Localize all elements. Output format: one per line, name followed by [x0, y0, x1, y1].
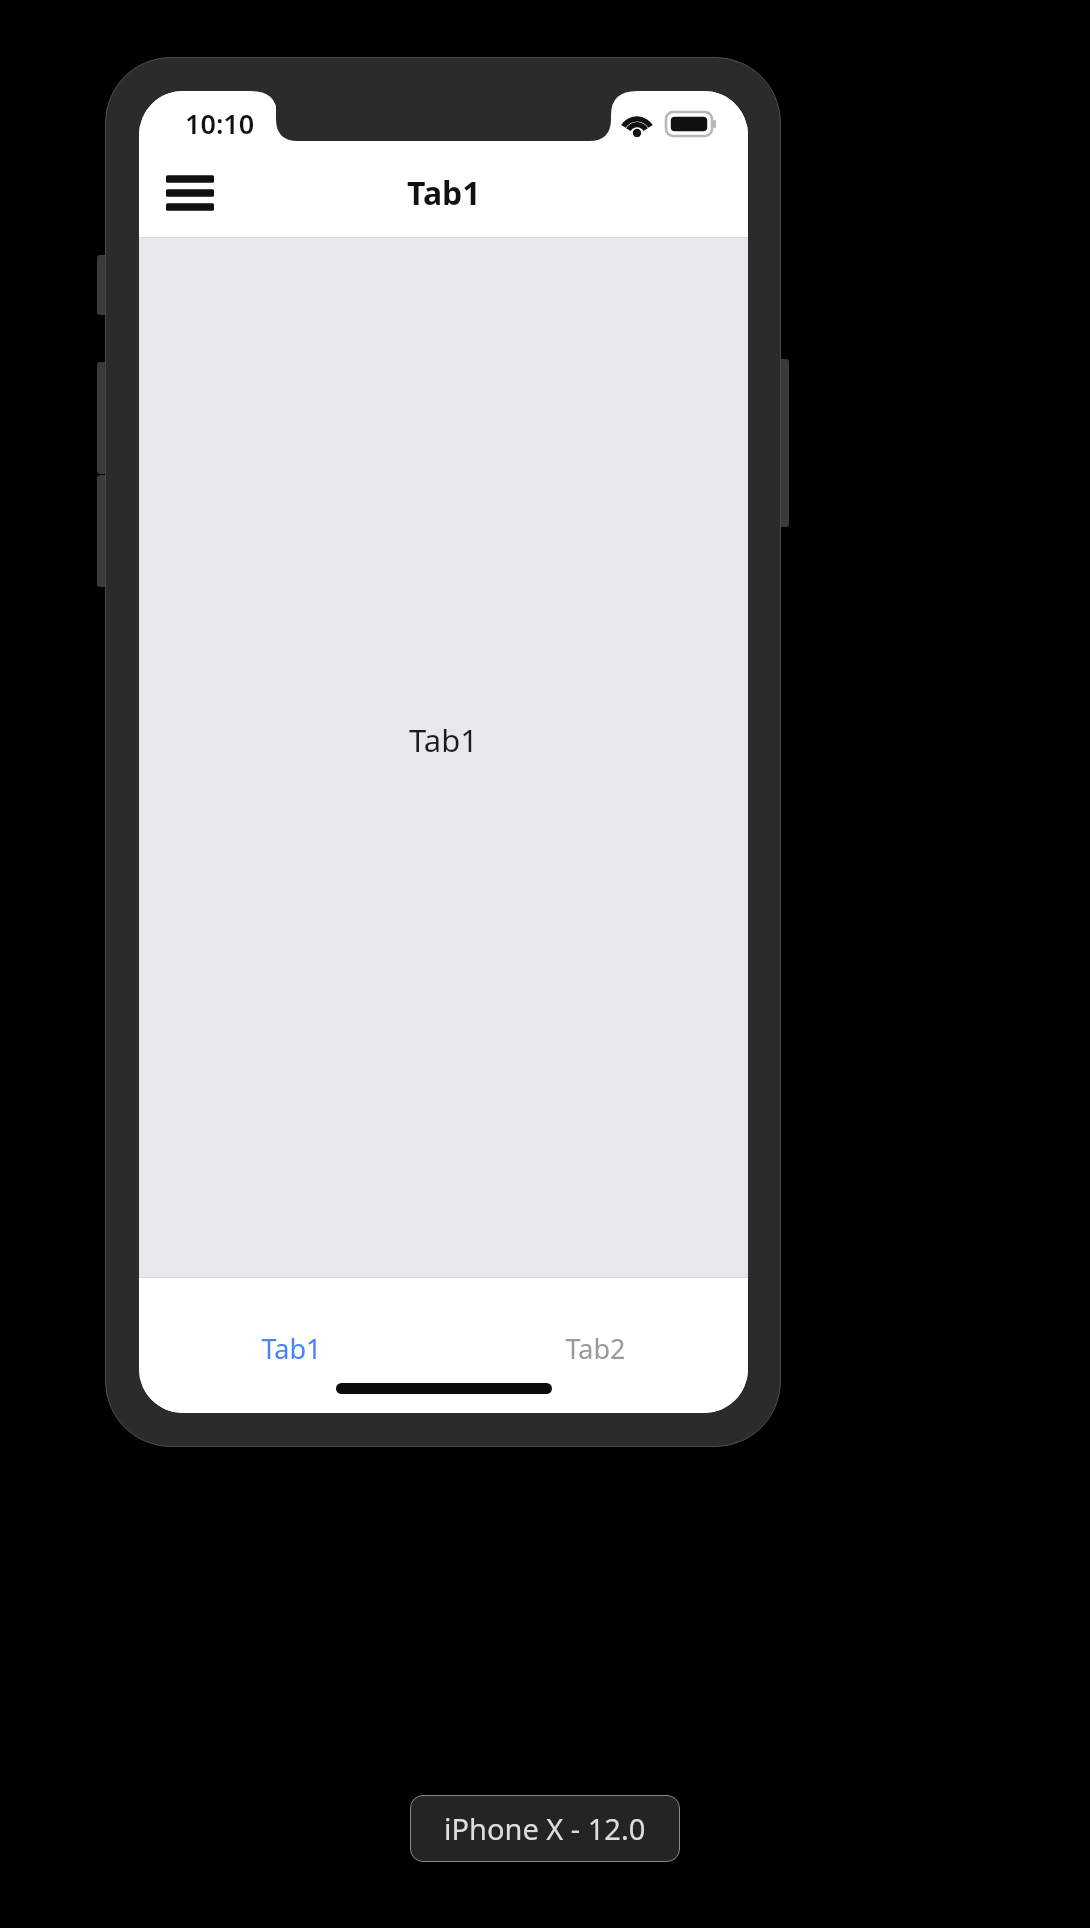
button[interactable]: Menu	[161, 164, 219, 222]
staticText: Tab1	[409, 719, 478, 761]
button[interactable]: Tab1	[139, 1330, 443, 1413]
staticText: Tab2	[565, 1330, 626, 1367]
button[interactable]: iPhone X - 12.0	[410, 1795, 680, 1862]
staticText: 10:10	[185, 105, 255, 142]
staticText: iPhone X - 12.0	[444, 1809, 646, 1848]
staticText: Tab1	[261, 1330, 322, 1367]
staticText: Tab1	[407, 171, 481, 215]
button[interactable]: Tab2	[443, 1330, 748, 1413]
